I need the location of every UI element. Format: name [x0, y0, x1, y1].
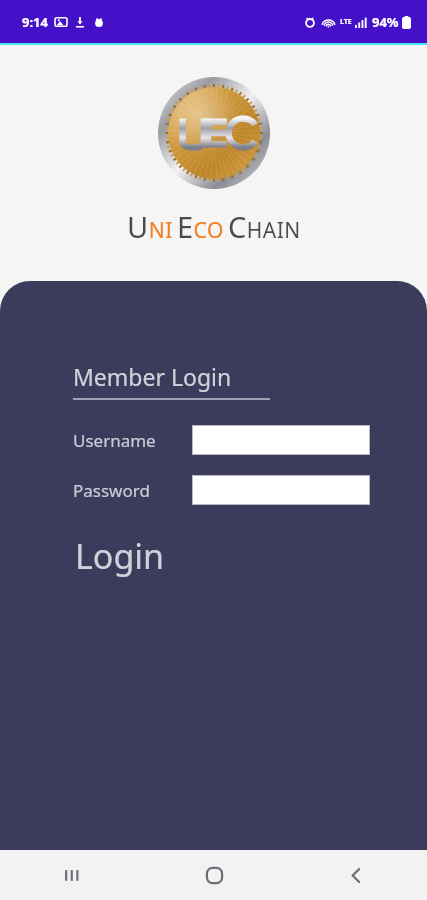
- staticText: 9:14: [22, 13, 48, 31]
- button[interactable]: Home: [143, 850, 285, 900]
- staticText: Login: [75, 533, 165, 579]
- staticText: UNI ECO CHAIN: [127, 207, 301, 246]
- staticText: LTE: [340, 17, 352, 27]
- button[interactable]: Recent apps: [0, 850, 143, 900]
- button[interactable]: Back: [285, 850, 427, 900]
- staticText: Username: [73, 429, 192, 452]
- staticText: Member Login: [73, 361, 232, 392]
- button[interactable]: Login: [73, 529, 167, 583]
- staticText: 94%: [372, 13, 399, 31]
- staticText: Password: [73, 479, 192, 502]
